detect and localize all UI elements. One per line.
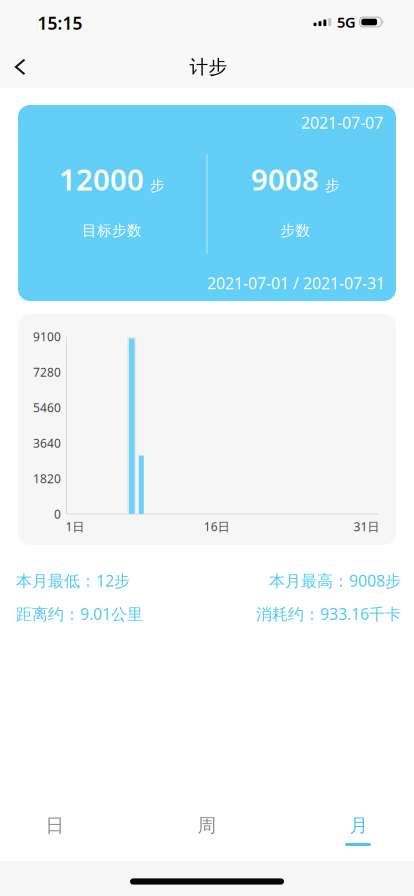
staticText: 周 [197,814,216,837]
staticText: 日 [45,814,64,837]
button[interactable]: Back [0,45,44,89]
button[interactable]: 月 [325,790,391,861]
staticText: 12000 [59,159,144,198]
staticText: 距离约：9.01公里 [16,603,143,624]
staticText: 月 [349,814,368,837]
button[interactable]: 周 [174,790,240,861]
staticText: 计步 [189,55,227,78]
staticText: 2021-07-07 [301,112,383,133]
staticText: 本月最高：9008步 [269,570,401,591]
staticText: 步数 [280,221,310,239]
button[interactable]: 日 [22,790,88,861]
staticText: 3640 [33,435,61,451]
staticText: 16日 [204,518,230,534]
staticText: 2021-07-01 / 2021-07-31 [207,272,385,294]
staticText: 1日 [65,518,84,534]
staticText: 9008 [251,159,319,198]
staticText: 5G [337,12,356,32]
staticText: 5460 [33,400,61,416]
staticText: 31日 [353,518,379,534]
staticText: 步 [150,176,165,194]
staticText: 消耗约：933.16千卡 [256,603,401,624]
staticText: 目标步数 [82,221,142,239]
staticText: 0 [54,506,61,522]
staticText: 9100 [33,329,61,345]
staticText: 步 [325,176,340,194]
staticText: 1820 [33,471,61,486]
staticText: 本月最低：12步 [16,570,130,591]
staticText: 7280 [33,364,61,380]
staticText: 15:15 [37,11,82,34]
